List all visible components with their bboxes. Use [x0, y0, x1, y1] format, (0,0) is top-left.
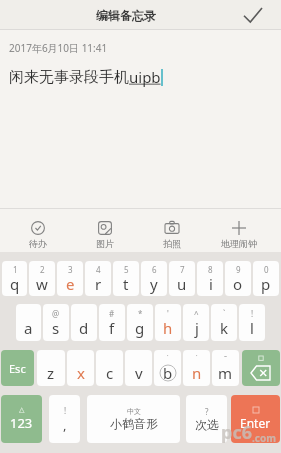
button[interactable]: d [71, 304, 97, 341]
staticText: 2017年6月10日 11:41 [9, 41, 108, 55]
button[interactable]: 7 [169, 261, 195, 296]
staticText: ˙ [196, 353, 198, 363]
button[interactable]: ˙ [154, 350, 181, 386]
staticText: 拍照 [163, 238, 181, 249]
staticText: 编辑备忘录 [96, 8, 156, 23]
staticText: pc6 [221, 420, 252, 445]
staticText: z [47, 363, 55, 383]
staticText: e [66, 274, 75, 294]
button[interactable]: ˙ [183, 350, 210, 386]
button[interactable]: 拍照 [138, 209, 205, 252]
staticText: 1 [13, 264, 18, 274]
button[interactable]: 3 [57, 261, 83, 296]
staticText: i [209, 274, 213, 294]
button[interactable]: @ [43, 304, 69, 341]
staticText: s [52, 318, 60, 338]
staticText: ' [167, 308, 169, 318]
staticText: x [77, 363, 85, 383]
button[interactable]: z [37, 350, 65, 386]
button[interactable]: x [67, 350, 94, 386]
button[interactable]: ^ [183, 304, 209, 341]
button[interactable]: * [127, 304, 153, 341]
staticText: b [163, 363, 173, 383]
staticText: n [192, 363, 202, 383]
staticText: 8 [208, 264, 213, 274]
staticText: h [163, 318, 173, 338]
staticText: uipb [129, 67, 161, 87]
staticText: y [150, 274, 158, 294]
staticText: a [24, 318, 33, 338]
staticText: 123 [10, 414, 33, 432]
staticText: 5 [124, 264, 129, 274]
staticText: △ [19, 406, 25, 414]
button[interactable] [229, 0, 281, 30]
staticText: v [135, 363, 143, 383]
button[interactable]: Esc [1, 350, 34, 386]
button[interactable]: ˉ [212, 350, 239, 386]
button[interactable]: ! [49, 395, 80, 443]
staticText: @ [52, 308, 60, 318]
button[interactable]: 9 [225, 261, 251, 296]
staticText: u [177, 274, 187, 294]
button[interactable]: 2 [29, 261, 55, 296]
button[interactable]: v [125, 350, 152, 386]
button[interactable]: ? [186, 395, 227, 443]
staticText: 次选 [195, 417, 219, 432]
button[interactable] [242, 350, 280, 386]
staticText: p [261, 274, 271, 294]
staticText: ` [223, 308, 226, 318]
button[interactable]: 1 [2, 261, 27, 296]
staticText: 地理闹钟 [221, 238, 257, 249]
staticText: l [250, 318, 254, 338]
staticText: o [233, 274, 243, 294]
staticText: ˙ [167, 353, 169, 363]
staticText: 待办 [29, 238, 47, 249]
staticText: j [195, 318, 199, 338]
staticText: g [135, 318, 145, 338]
staticText: d [79, 318, 89, 338]
staticText: 图片 [96, 238, 114, 249]
button[interactable]: ` [211, 304, 237, 341]
staticText: 中文 [127, 407, 141, 416]
button[interactable]: 中文 [87, 395, 180, 443]
button[interactable]: 地理闹钟 [205, 209, 272, 252]
staticText: t [123, 274, 129, 294]
staticText: ^ [194, 308, 199, 318]
staticText: Enter [240, 415, 271, 431]
staticText: 7 [180, 264, 185, 274]
staticText: # [109, 308, 115, 318]
staticText: 3 [68, 264, 73, 274]
staticText: * [138, 308, 143, 318]
button[interactable]: 0 [253, 261, 279, 296]
staticText: f [109, 318, 115, 338]
staticText: ˉ [224, 353, 228, 363]
button[interactable]: Enter [231, 395, 280, 443]
staticText: q [10, 274, 20, 294]
staticText: 小鹤音形 [110, 416, 158, 431]
button[interactable]: 5 [113, 261, 139, 296]
staticText: , [63, 416, 67, 434]
staticText: c [106, 363, 114, 383]
button[interactable]: 待办 [5, 209, 71, 252]
button[interactable]: # [99, 304, 125, 341]
button[interactable]: ' [155, 304, 181, 341]
button[interactable]: c [96, 350, 123, 386]
button[interactable]: 4 [85, 261, 111, 296]
button[interactable]: 6 [141, 261, 167, 296]
staticText: k [220, 318, 229, 338]
button[interactable]: a [16, 304, 41, 341]
staticText: r [95, 274, 102, 294]
staticText: ! [251, 308, 254, 318]
button[interactable]: 8 [197, 261, 223, 296]
button[interactable]: ! [239, 304, 265, 341]
staticText: 6 [152, 264, 157, 274]
staticText: ? [205, 406, 209, 417]
staticText: 2 [40, 264, 45, 274]
staticText: Esc [9, 361, 26, 376]
staticText: .com [252, 431, 276, 445]
button[interactable]: 图片 [71, 209, 138, 252]
staticText: ! [64, 405, 67, 416]
button[interactable]: △ [1, 395, 42, 443]
staticText: 闲来无事录段手机 [9, 68, 129, 87]
staticText: m [218, 363, 233, 383]
